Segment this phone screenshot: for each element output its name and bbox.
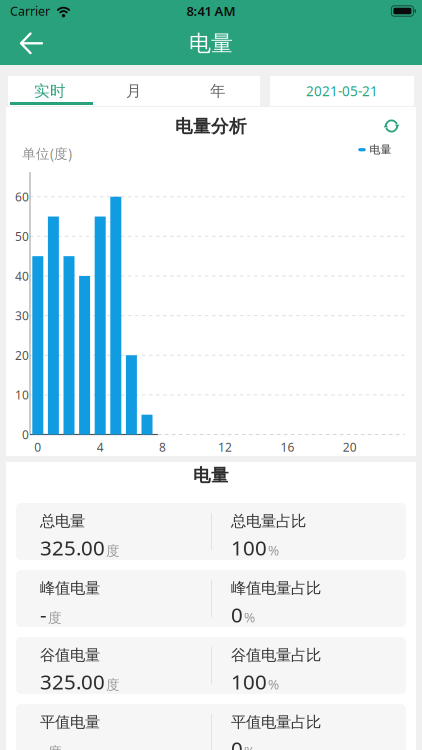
- staticText: 峰值电量: [40, 578, 100, 598]
- staticText: %: [268, 541, 279, 560]
- staticText: 度: [106, 543, 120, 560]
- staticText: 8:41 AM: [186, 2, 235, 20]
- staticText: 电量分析: [175, 115, 247, 137]
- button[interactable]: Back: [0, 24, 55, 62]
- staticText: 月: [126, 81, 142, 101]
- staticText: 40: [15, 268, 29, 284]
- staticText: 325.00: [40, 534, 105, 562]
- button[interactable]: 年: [176, 76, 260, 106]
- staticText: 总电量: [40, 511, 85, 531]
- button[interactable]: 2021-05-21: [270, 76, 414, 106]
- staticText: 总电量占比: [231, 511, 306, 531]
- button[interactable]: 月: [92, 76, 176, 106]
- staticText: 60: [15, 188, 29, 205]
- staticText: 0: [231, 601, 243, 629]
- staticText: 2021-05-21: [306, 82, 378, 100]
- staticText: 实时: [34, 81, 66, 101]
- button[interactable]: 实时: [8, 76, 92, 106]
- staticText: 20: [343, 439, 357, 455]
- staticText: 谷值电量: [40, 645, 100, 665]
- staticText: %: [244, 742, 255, 750]
- staticText: 12: [218, 439, 232, 455]
- staticText: 50: [15, 228, 29, 244]
- staticText: 4: [97, 439, 104, 455]
- staticText: 峰值电量占比: [231, 578, 321, 598]
- staticText: 谷值电量占比: [231, 645, 321, 665]
- staticText: 20: [15, 347, 29, 363]
- staticText: 16: [280, 439, 294, 455]
- staticText: 度: [48, 610, 62, 627]
- button[interactable]: 刷新: [380, 115, 402, 137]
- staticText: 电量: [189, 30, 233, 57]
- staticText: 平值电量占比: [231, 712, 321, 732]
- staticText: 电量: [193, 464, 229, 486]
- staticText: 100: [231, 668, 267, 696]
- staticText: 度: [106, 677, 120, 694]
- staticText: 电量: [369, 143, 391, 157]
- staticText: 平值电量: [40, 712, 100, 732]
- staticText: %: [268, 675, 279, 694]
- staticText: 0: [231, 735, 243, 750]
- staticText: Carrier: [10, 2, 50, 19]
- staticText: %: [244, 608, 255, 627]
- staticText: 8: [159, 439, 166, 455]
- staticText: 0: [34, 439, 41, 455]
- staticText: -: [40, 601, 47, 629]
- staticText: 0: [22, 426, 29, 443]
- staticText: 度: [48, 744, 62, 750]
- staticText: 年: [210, 81, 226, 101]
- staticText: 100: [231, 534, 267, 562]
- staticText: 30: [15, 307, 29, 324]
- staticText: 10: [15, 387, 29, 403]
- staticText: 325.00: [40, 668, 105, 696]
- staticText: 单位(度): [22, 144, 72, 163]
